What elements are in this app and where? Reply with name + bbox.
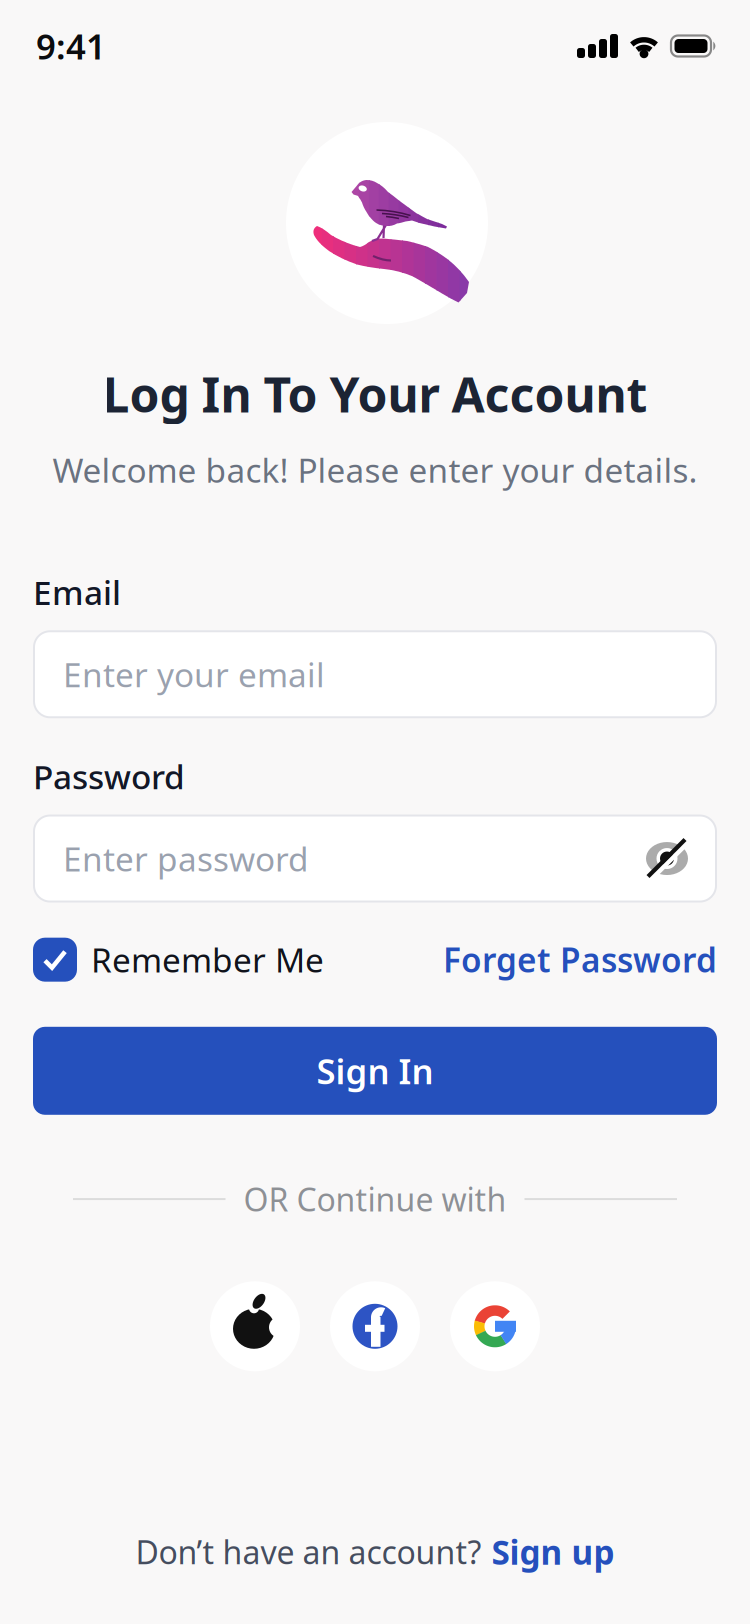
staticText: Log In To Your Account <box>102 362 647 426</box>
button[interactable]: Show password <box>645 836 689 880</box>
staticText: Sign In <box>316 1048 433 1094</box>
staticText: OR Continue with <box>243 1178 506 1220</box>
button[interactable]: Continue with Facebook <box>330 1281 420 1371</box>
staticText: Enter password <box>63 836 309 881</box>
button[interactable]: Continue with Apple <box>210 1281 300 1371</box>
button[interactable]: Continue with Google <box>450 1281 540 1371</box>
staticText: Email <box>33 570 121 614</box>
button[interactable]: Sign In <box>33 1027 717 1115</box>
staticText: Password <box>33 754 185 799</box>
button[interactable]: Remember Me <box>33 937 324 982</box>
staticText: Welcome back! Please enter your details. <box>52 448 697 492</box>
staticText: Enter your email <box>63 652 325 696</box>
staticText: Sign up <box>491 1530 614 1574</box>
staticText: Remember Me <box>91 937 324 982</box>
staticText: Don’t have an account? <box>135 1531 481 1573</box>
button[interactable]: Forget Password <box>443 937 717 982</box>
button[interactable]: Sign up <box>491 1530 614 1574</box>
staticText: 9:41 <box>36 23 106 69</box>
staticText: Forget Password <box>443 937 717 982</box>
